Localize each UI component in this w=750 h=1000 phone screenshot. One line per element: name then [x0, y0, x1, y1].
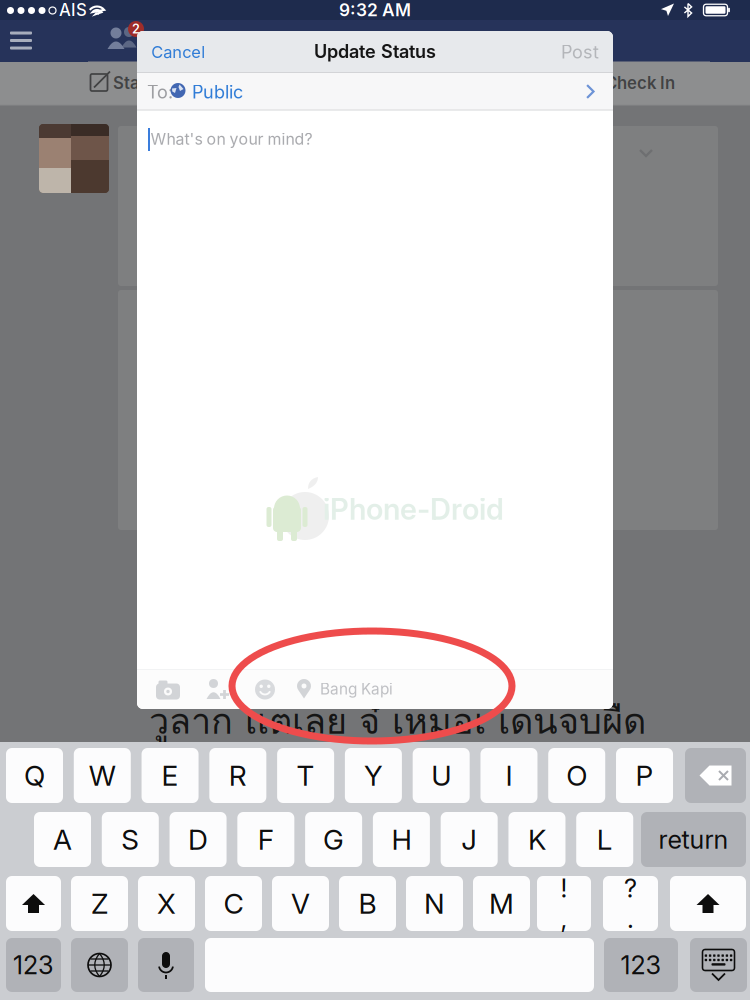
button[interactable]: E: [142, 748, 199, 803]
staticText: N: [424, 887, 445, 920]
button[interactable]: V: [272, 876, 329, 931]
button[interactable]: Feeling or activity: [255, 679, 275, 699]
button[interactable]: M: [473, 876, 530, 931]
staticText: A: [53, 823, 72, 856]
button[interactable]: 123: [6, 938, 61, 992]
staticText: J: [461, 823, 477, 856]
staticText: C: [223, 887, 243, 920]
button[interactable]: T: [277, 748, 334, 803]
staticText: Check In: [605, 73, 675, 93]
staticText: iPhone-Droid: [323, 491, 504, 527]
button[interactable]: ?: [603, 873, 658, 934]
staticText: Z: [91, 887, 108, 920]
staticText: ?: [624, 873, 637, 903]
staticText: X: [157, 887, 176, 920]
staticText: P: [635, 759, 653, 792]
button[interactable]: !: [537, 873, 591, 934]
staticText: Bang Kapi: [320, 680, 393, 698]
button[interactable]: D: [170, 812, 227, 867]
button[interactable]: Check In: [580, 61, 710, 104]
button[interactable]: Bang Kapi: [289, 670, 429, 709]
button[interactable]: Q: [6, 748, 63, 803]
button[interactable]: H: [373, 812, 430, 867]
button[interactable]: Delete: [685, 748, 746, 803]
staticText: วูลาก เเตเลย จ๋ เหมอเ เดนจบผืด: [149, 692, 646, 750]
button[interactable]: To:: [137, 73, 613, 110]
staticText: Cancel: [151, 42, 205, 62]
staticText: Status: [113, 73, 165, 93]
button[interactable]: 123: [604, 938, 678, 992]
staticText: V: [291, 887, 310, 920]
button[interactable]: J: [441, 812, 498, 867]
staticText: !: [560, 873, 567, 903]
button[interactable]: N: [406, 876, 463, 931]
staticText: Q: [24, 759, 45, 792]
button[interactable]: Add photo: [156, 679, 180, 700]
staticText: .: [627, 903, 634, 934]
button[interactable]: B: [339, 876, 396, 931]
button[interactable]: K: [508, 812, 565, 867]
button[interactable]: Shift: [670, 876, 746, 931]
staticText: L: [597, 823, 613, 856]
button[interactable]: Tag people: [206, 679, 228, 700]
button[interactable]: O: [548, 748, 605, 803]
staticText: Y: [364, 759, 383, 792]
staticText: Public: [192, 81, 243, 103]
staticText: 123: [620, 950, 661, 980]
button[interactable]: Photo: [338, 61, 468, 104]
button[interactable]: W: [74, 748, 131, 803]
button[interactable]: Hide keyboard: [690, 938, 747, 992]
button[interactable]: return: [641, 812, 746, 867]
button[interactable]: I: [480, 748, 537, 803]
button[interactable]: U: [413, 748, 470, 803]
staticText: E: [162, 759, 179, 792]
button[interactable]: R: [209, 748, 266, 803]
button[interactable]: Z: [71, 876, 128, 931]
staticText: 2: [132, 21, 140, 37]
staticText: G: [323, 823, 344, 856]
staticText: AIS: [59, 0, 87, 20]
button[interactable]: Status: [88, 61, 218, 104]
staticText: 123: [13, 950, 54, 980]
button[interactable]: P: [616, 748, 673, 803]
staticText: K: [528, 823, 546, 856]
button[interactable]: F: [237, 812, 294, 867]
staticText: return: [658, 824, 728, 855]
staticText: 9:32 AM: [339, 0, 411, 20]
staticText: T: [297, 759, 315, 792]
staticText: M: [489, 887, 514, 920]
staticText: S: [121, 823, 139, 856]
staticText: R: [229, 759, 247, 792]
staticText: What's on your mind?: [150, 129, 312, 149]
button[interactable]: A: [34, 812, 91, 867]
staticText: Update Status: [314, 41, 436, 62]
staticText: I: [505, 759, 512, 792]
button[interactable]: S: [102, 812, 159, 867]
staticText: To:: [147, 81, 173, 103]
button[interactable]: L: [576, 812, 633, 867]
button[interactable]: Cancel: [141, 31, 241, 73]
button[interactable]: G: [305, 812, 362, 867]
button[interactable]: Next keyboard: [71, 938, 128, 992]
button[interactable]: Y: [345, 748, 402, 803]
staticText: Post: [561, 41, 599, 63]
staticText: D: [188, 823, 208, 856]
staticText: F: [258, 823, 274, 856]
button[interactable]: Dictate: [138, 938, 194, 992]
button[interactable]: Post: [513, 31, 613, 73]
staticText: W: [89, 759, 116, 792]
staticText: O: [566, 759, 587, 792]
staticText: B: [358, 887, 376, 920]
button[interactable]: Shift: [6, 876, 61, 931]
staticText: H: [391, 823, 411, 856]
staticText: ,: [560, 903, 567, 934]
button[interactable]: X: [138, 876, 195, 931]
staticText: U: [431, 759, 451, 792]
button[interactable]: C: [205, 876, 262, 931]
